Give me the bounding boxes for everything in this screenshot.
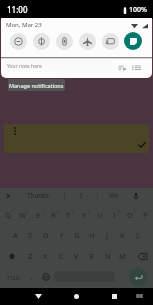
staticText: V <box>74 251 79 261</box>
staticText: L <box>136 230 140 240</box>
button[interactable]: Backspace <box>133 246 151 266</box>
button[interactable]: Your note here <box>3 60 111 72</box>
button[interactable]: D <box>38 225 53 245</box>
button[interactable]: Auto rotate <box>33 33 50 50</box>
button[interactable]: K <box>115 225 130 245</box>
button[interactable]: Thanks <box>16 188 60 203</box>
staticText: 4 <box>57 209 60 214</box>
staticText: P <box>143 210 148 220</box>
staticText: 11:00 <box>7 4 28 15</box>
button[interactable]: I <box>107 205 122 225</box>
button[interactable]: V <box>69 246 84 266</box>
staticText: Your note here <box>7 63 42 70</box>
button[interactable]: T <box>61 205 76 225</box>
button[interactable]: Q <box>0 205 15 225</box>
button[interactable]: X <box>38 246 53 266</box>
button[interactable]: H <box>84 225 99 245</box>
button[interactable]: P <box>138 205 153 225</box>
button[interactable]: C <box>54 246 69 266</box>
staticText: Manage notifications <box>9 82 64 89</box>
staticText: R <box>51 210 56 220</box>
staticText: S <box>28 230 33 240</box>
button[interactable]: More suggestions <box>0 188 16 203</box>
staticText: I <box>80 191 83 200</box>
staticText: We <box>109 191 119 200</box>
button[interactable]: N <box>100 246 115 266</box>
button[interactable]: O <box>122 205 137 225</box>
button[interactable]: Manage notifications <box>8 79 65 91</box>
other: Done <box>137 140 147 150</box>
staticText: T <box>66 210 71 220</box>
button[interactable]: Enter <box>129 268 147 286</box>
button[interactable]: Notification options <box>132 63 141 72</box>
staticText: E <box>36 210 41 220</box>
staticText: G <box>74 230 80 240</box>
button[interactable]: W <box>15 205 30 225</box>
staticText: , <box>31 272 33 282</box>
staticText: B <box>89 251 94 261</box>
staticText: . <box>121 272 123 282</box>
button[interactable]: Back <box>28 288 48 305</box>
staticText: F <box>60 230 64 240</box>
other: More options <box>12 126 18 136</box>
button[interactable]: Shift <box>3 246 20 266</box>
button[interactable]: Emoji <box>39 267 53 287</box>
button[interactable]: U <box>92 205 107 225</box>
button[interactable]: E <box>31 205 46 225</box>
button[interactable]: Airplane mode <box>79 33 96 50</box>
button[interactable]: Home <box>66 288 86 305</box>
button[interactable]: Screen cast <box>102 33 119 50</box>
staticText: J <box>106 230 109 240</box>
staticText: W <box>19 210 26 220</box>
button[interactable]: Reply <box>118 63 127 72</box>
staticText: 8 <box>118 209 121 214</box>
staticText: Z <box>28 251 33 261</box>
button[interactable]: More options <box>4 124 149 153</box>
button[interactable]: Voice input <box>129 188 143 203</box>
staticText: X <box>43 251 48 261</box>
button[interactable]: ?123 <box>3 267 23 287</box>
button[interactable]: Notes <box>124 32 142 50</box>
button[interactable]: We <box>104 188 124 203</box>
staticText: I <box>113 210 116 220</box>
staticText: Mon, Mar 23 <box>6 21 42 29</box>
staticText: O <box>127 210 133 220</box>
button[interactable]: Switch keyboard <box>131 288 147 305</box>
staticText: 3 <box>42 209 45 214</box>
button[interactable]: S <box>23 225 38 245</box>
button[interactable]: Y <box>77 205 92 225</box>
staticText: N <box>105 251 111 261</box>
button[interactable]: Do not disturb <box>10 33 27 50</box>
staticText: C <box>59 251 64 261</box>
button[interactable]: Z <box>23 246 38 266</box>
staticText: Thanks <box>27 191 49 200</box>
button[interactable]: B <box>84 246 99 266</box>
staticText: K <box>120 230 125 240</box>
button[interactable]: Recent apps <box>104 288 124 305</box>
button[interactable]: Battery saver <box>56 33 73 50</box>
staticText: U <box>97 210 103 220</box>
button[interactable]: A <box>8 225 23 245</box>
button[interactable]: G <box>69 225 84 245</box>
staticText: A <box>13 230 18 240</box>
button[interactable]: M <box>115 246 130 266</box>
staticText: Y <box>82 210 87 220</box>
staticText: M <box>119 251 126 261</box>
button[interactable]: F <box>54 225 69 245</box>
button[interactable]: R <box>46 205 61 225</box>
staticText: ?123 <box>7 274 19 281</box>
staticText: 100% <box>129 5 147 15</box>
staticText: D <box>43 230 49 240</box>
